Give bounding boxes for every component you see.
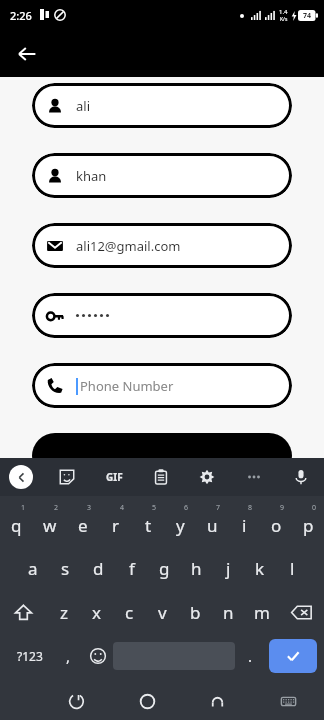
staticText: l <box>290 557 295 580</box>
staticText: s <box>61 557 70 580</box>
staticText: . <box>248 646 253 666</box>
staticText: d <box>93 557 104 580</box>
button[interactable]: z <box>47 590 80 634</box>
staticText: , <box>66 646 71 666</box>
staticText: ali <box>76 97 91 115</box>
button[interactable]: Phone Number <box>32 363 292 408</box>
staticText: k <box>255 557 265 580</box>
button[interactable]: n <box>212 590 245 634</box>
button[interactable]: 7 <box>196 500 228 546</box>
staticText: g <box>159 557 170 580</box>
button[interactable]: . <box>235 634 266 678</box>
staticText: 1 <box>21 503 26 513</box>
button[interactable]: Emoji <box>82 634 113 678</box>
button[interactable]: Back <box>8 35 46 73</box>
staticText: m <box>254 601 270 624</box>
button[interactable]: v <box>146 590 179 634</box>
staticText: 74 <box>303 11 312 21</box>
staticText: b <box>190 601 201 624</box>
button[interactable]: 4 <box>99 500 132 546</box>
button[interactable] <box>32 293 292 338</box>
staticText: e <box>78 514 88 537</box>
staticText: x <box>92 601 101 624</box>
button[interactable]: l <box>276 546 308 590</box>
button[interactable]: j <box>212 546 244 590</box>
button[interactable]: h <box>180 546 212 590</box>
staticText: 4 <box>120 503 125 513</box>
button[interactable]: GIF <box>99 462 129 492</box>
staticText: y <box>176 514 185 537</box>
button[interactable]: Home <box>127 682 167 720</box>
button[interactable]: khan <box>32 153 292 198</box>
staticText: 7 <box>216 503 221 513</box>
button[interactable]: d <box>82 546 115 590</box>
button[interactable]: ali12@gmail.com <box>32 223 292 268</box>
staticText: Phone Number <box>80 377 174 395</box>
staticText: z <box>60 601 68 624</box>
staticText: 2:26 <box>10 8 32 23</box>
staticText: 0 <box>312 503 317 513</box>
staticText: 1.4 <box>279 8 288 16</box>
button[interactable]: a <box>16 546 49 590</box>
button[interactable]: 9 <box>260 500 292 546</box>
staticText: p <box>303 514 314 537</box>
button[interactable]: 5 <box>132 500 164 546</box>
button[interactable]: Settings <box>192 462 222 492</box>
staticText: ?123 <box>17 648 43 664</box>
staticText: t <box>145 514 152 537</box>
button[interactable]: Backspace <box>278 590 324 634</box>
button[interactable]: 1 <box>0 500 33 546</box>
button[interactable]: g <box>148 546 180 590</box>
staticText: ali12@gmail.com <box>76 237 181 255</box>
staticText: khan <box>76 167 107 185</box>
staticText: i <box>242 514 247 537</box>
button[interactable]: ali <box>32 83 292 128</box>
button[interactable]: Voice input <box>286 462 316 492</box>
staticText: 3 <box>87 503 92 513</box>
button[interactable]: , <box>55 634 82 678</box>
staticText: 2 <box>54 503 59 513</box>
button[interactable]: b <box>179 590 212 634</box>
button[interactable]: 2 <box>33 500 66 546</box>
button[interactable]: Close toolbar <box>9 465 33 489</box>
button[interactable]: 0 <box>292 500 324 546</box>
button[interactable]: Done <box>269 639 317 673</box>
button[interactable]: 8 <box>228 500 260 546</box>
staticText: 5 <box>152 503 157 513</box>
staticText: j <box>226 557 231 580</box>
button[interactable]: Clipboard <box>146 462 176 492</box>
staticText: 8 <box>248 503 253 513</box>
button[interactable]: 3 <box>66 500 99 546</box>
button[interactable]: f <box>115 546 148 590</box>
staticText: w <box>43 514 57 537</box>
staticText: f <box>129 557 135 580</box>
button[interactable]: c <box>113 590 146 634</box>
button[interactable]: Stickers <box>52 462 82 492</box>
button[interactable]: Back <box>197 682 237 720</box>
button[interactable]: Recents <box>56 682 96 720</box>
button[interactable] <box>32 433 292 479</box>
staticText: GIF <box>106 470 123 484</box>
staticText: c <box>125 601 134 624</box>
button[interactable]: m <box>245 590 278 634</box>
button[interactable]: More options <box>239 462 269 492</box>
staticText: u <box>207 514 218 537</box>
staticText: v <box>158 601 167 624</box>
staticText: q <box>11 514 22 537</box>
button[interactable]: k <box>244 546 276 590</box>
button[interactable]: Shift <box>0 590 47 634</box>
staticText: n <box>223 601 234 624</box>
staticText: 6 <box>184 503 189 513</box>
staticText: K/s <box>280 16 288 23</box>
button[interactable]: s <box>49 546 82 590</box>
button[interactable]: x <box>80 590 113 634</box>
staticText: o <box>271 514 282 537</box>
button[interactable]: 6 <box>164 500 196 546</box>
staticText: h <box>191 557 202 580</box>
button[interactable]: Hide keyboard <box>268 682 308 720</box>
staticText: a <box>28 557 38 580</box>
staticText: r <box>112 514 120 537</box>
button[interactable]: ?123 <box>4 634 55 678</box>
staticText: 9 <box>280 503 285 513</box>
